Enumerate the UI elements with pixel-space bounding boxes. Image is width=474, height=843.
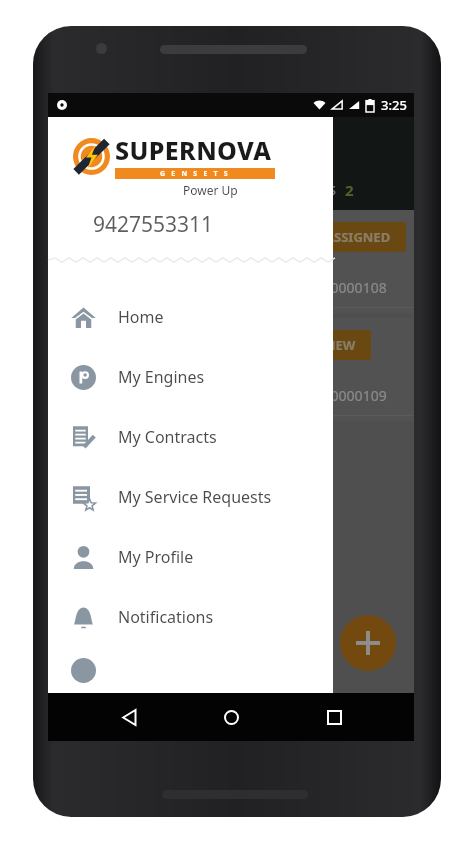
staticText: SV-0000108 [310,278,387,297]
staticText: Notifications [118,606,214,628]
staticText: 3:25 [381,96,407,114]
staticText: 2 [345,180,354,200]
button[interactable]: Back [107,695,151,739]
staticText: SUPERNOVA [115,133,272,167]
button[interactable]: My Engines [48,347,333,407]
button[interactable]: Recent apps [312,695,356,739]
button[interactable]: My Profile [48,527,333,587]
button[interactable]: Home [48,287,333,347]
button[interactable]: Home [209,695,253,739]
staticText: My Contracts [118,426,217,448]
staticText: My Engines [118,366,205,388]
button[interactable]: My Service Requests [48,467,333,527]
staticText: Power Up [183,182,238,198]
button[interactable]: My Contracts [48,407,333,467]
button[interactable]: Settings [48,647,333,693]
other: Settings [71,658,96,683]
staticText: NEW [325,336,356,354]
staticText: ASSIGNED [325,228,391,246]
staticText: My Service Requests [118,486,272,508]
staticText: G E N S E T S [160,169,230,179]
staticText: SV-0000109 [310,386,387,405]
staticText: 9427553311 [93,210,214,239]
staticText: SERVICES [278,181,336,199]
staticText: Home [118,306,164,328]
staticText: My Profile [118,546,194,568]
button[interactable]: Add service request [340,615,396,671]
button[interactable]: Notifications [48,587,333,647]
